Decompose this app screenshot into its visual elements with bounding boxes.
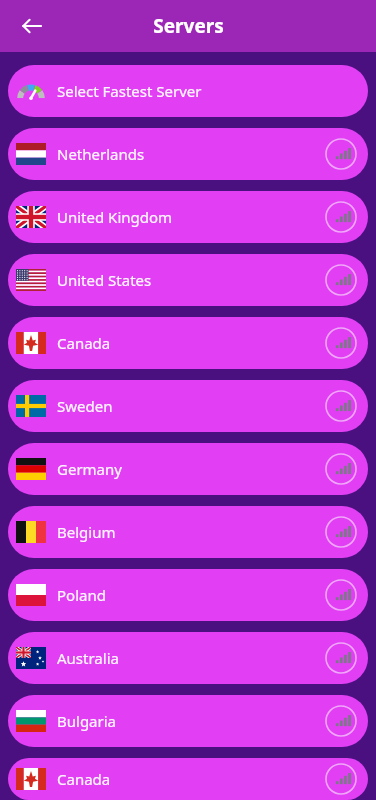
button[interactable]: Poland bbox=[8, 569, 368, 621]
button[interactable]: Germany bbox=[8, 443, 368, 495]
staticText: United States bbox=[57, 270, 152, 290]
button[interactable]: Canada bbox=[8, 317, 368, 369]
staticText: Netherlands bbox=[57, 144, 145, 164]
staticText: Poland bbox=[57, 585, 106, 605]
button[interactable]: Sweden bbox=[8, 380, 368, 432]
staticText: United Kingdom bbox=[57, 207, 173, 227]
button[interactable]: Australia bbox=[8, 632, 368, 684]
button[interactable]: United Kingdom bbox=[8, 191, 368, 243]
button[interactable]: Back bbox=[10, 4, 54, 48]
staticText: Germany bbox=[57, 459, 122, 479]
staticText: Bulgaria bbox=[57, 711, 117, 731]
staticText: Canada bbox=[57, 769, 111, 789]
button[interactable]: United States bbox=[8, 254, 368, 306]
button[interactable]: Canada bbox=[8, 758, 368, 800]
staticText: Select Fastest Server bbox=[57, 81, 202, 101]
button[interactable]: Netherlands bbox=[8, 128, 368, 180]
button[interactable]: Select Fastest Server bbox=[8, 65, 368, 117]
staticText: Australia bbox=[57, 648, 119, 668]
staticText: Belgium bbox=[57, 522, 116, 542]
button[interactable]: Belgium bbox=[8, 506, 368, 558]
staticText: Servers bbox=[153, 13, 224, 39]
staticText: Sweden bbox=[57, 396, 113, 416]
staticText: Canada bbox=[57, 333, 111, 353]
button[interactable]: Bulgaria bbox=[8, 695, 368, 747]
